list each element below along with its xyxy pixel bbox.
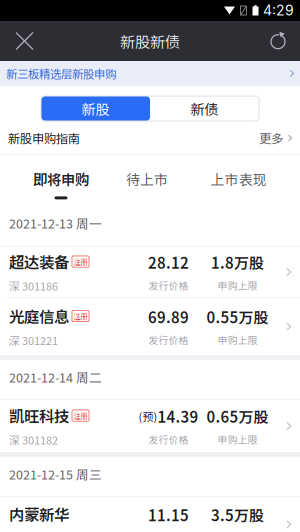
staticText: 注册 <box>73 256 87 267</box>
staticText: 4:29 <box>263 2 294 19</box>
button[interactable]: 凯旺科技 <box>0 400 300 452</box>
staticText: 新三板精选层新股申购 <box>6 65 116 82</box>
button[interactable]: 内蒙新华 <box>0 497 300 532</box>
staticText: 申购上限 <box>217 333 257 347</box>
staticText: 发行价格 <box>148 333 188 347</box>
staticText: 新股 <box>81 98 109 119</box>
staticText: 光庭信息 <box>9 305 69 327</box>
staticText: 14.39 <box>157 405 198 427</box>
staticText: 待上市 <box>126 169 168 189</box>
staticText: 0.55万股 <box>206 306 268 328</box>
button[interactable]: Refresh <box>257 21 300 61</box>
staticText: 发行价格 <box>148 278 188 292</box>
staticText: 上市表现 <box>210 169 266 189</box>
staticText: 发行价格 <box>148 432 188 446</box>
button[interactable]: 待上市 <box>104 155 190 205</box>
staticText: 更多 <box>259 129 283 147</box>
staticText: 2021-12-13 周一 <box>9 214 102 232</box>
staticText: 深 301221 <box>9 332 58 348</box>
staticText: 69.89 <box>148 306 189 328</box>
staticText: 超达装备 <box>9 250 69 273</box>
staticText: 内蒙新华 <box>9 503 69 525</box>
staticText: (预) <box>138 408 157 424</box>
staticText: 28.12 <box>148 251 189 273</box>
staticText: 申购上限 <box>217 278 257 292</box>
staticText: 1.8万股 <box>211 251 264 273</box>
staticText: 凯旺科技 <box>9 404 69 427</box>
button[interactable]: 新股 <box>41 96 150 121</box>
button[interactable]: 上市表现 <box>190 155 287 205</box>
staticText: 3.5万股 <box>211 504 264 526</box>
button[interactable]: 新债 <box>150 96 259 121</box>
staticText: 深 301186 <box>9 278 58 294</box>
staticText: 深 301182 <box>9 432 58 448</box>
button[interactable]: Close <box>0 21 45 61</box>
staticText: 2021-12-14 周二 <box>9 368 102 386</box>
staticText: 注册 <box>73 311 87 321</box>
staticText: 0.65万股 <box>206 405 268 427</box>
button[interactable]: 超达装备 <box>0 247 300 297</box>
staticText: 即将申购 <box>33 169 89 189</box>
staticText: 新股申购指南 <box>8 129 80 147</box>
staticText: 申购上限 <box>217 432 257 446</box>
button[interactable]: 光庭信息 <box>0 298 300 355</box>
button[interactable]: 新三板精选层新股申购 <box>0 61 300 86</box>
staticText: 新股新债 <box>120 30 180 52</box>
button[interactable]: 新股申购指南 <box>0 124 300 152</box>
button[interactable]: 即将申购 <box>18 155 104 205</box>
staticText: 2021-12-15 周三 <box>9 465 102 483</box>
staticText: 注册 <box>73 410 87 421</box>
staticText: 11.15 <box>148 504 189 526</box>
staticText: 新债 <box>190 98 218 119</box>
